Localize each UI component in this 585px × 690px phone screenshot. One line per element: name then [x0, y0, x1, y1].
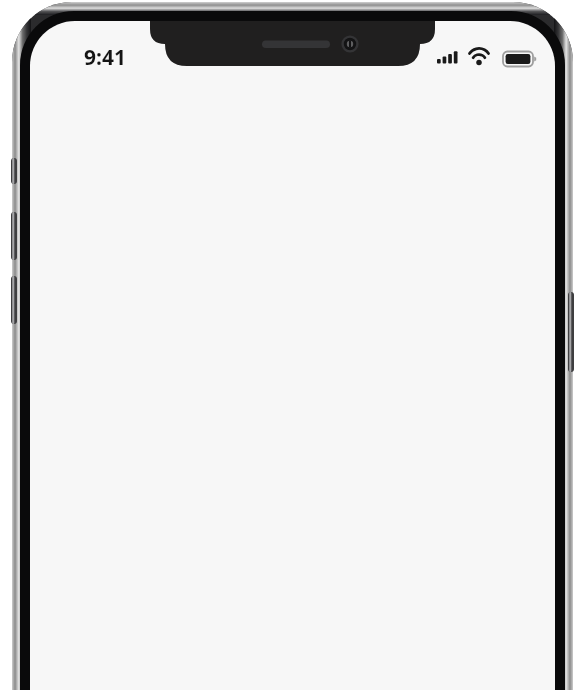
button[interactable]: iPhone device mockup, status bar 9:41	[0, 0, 585, 690]
